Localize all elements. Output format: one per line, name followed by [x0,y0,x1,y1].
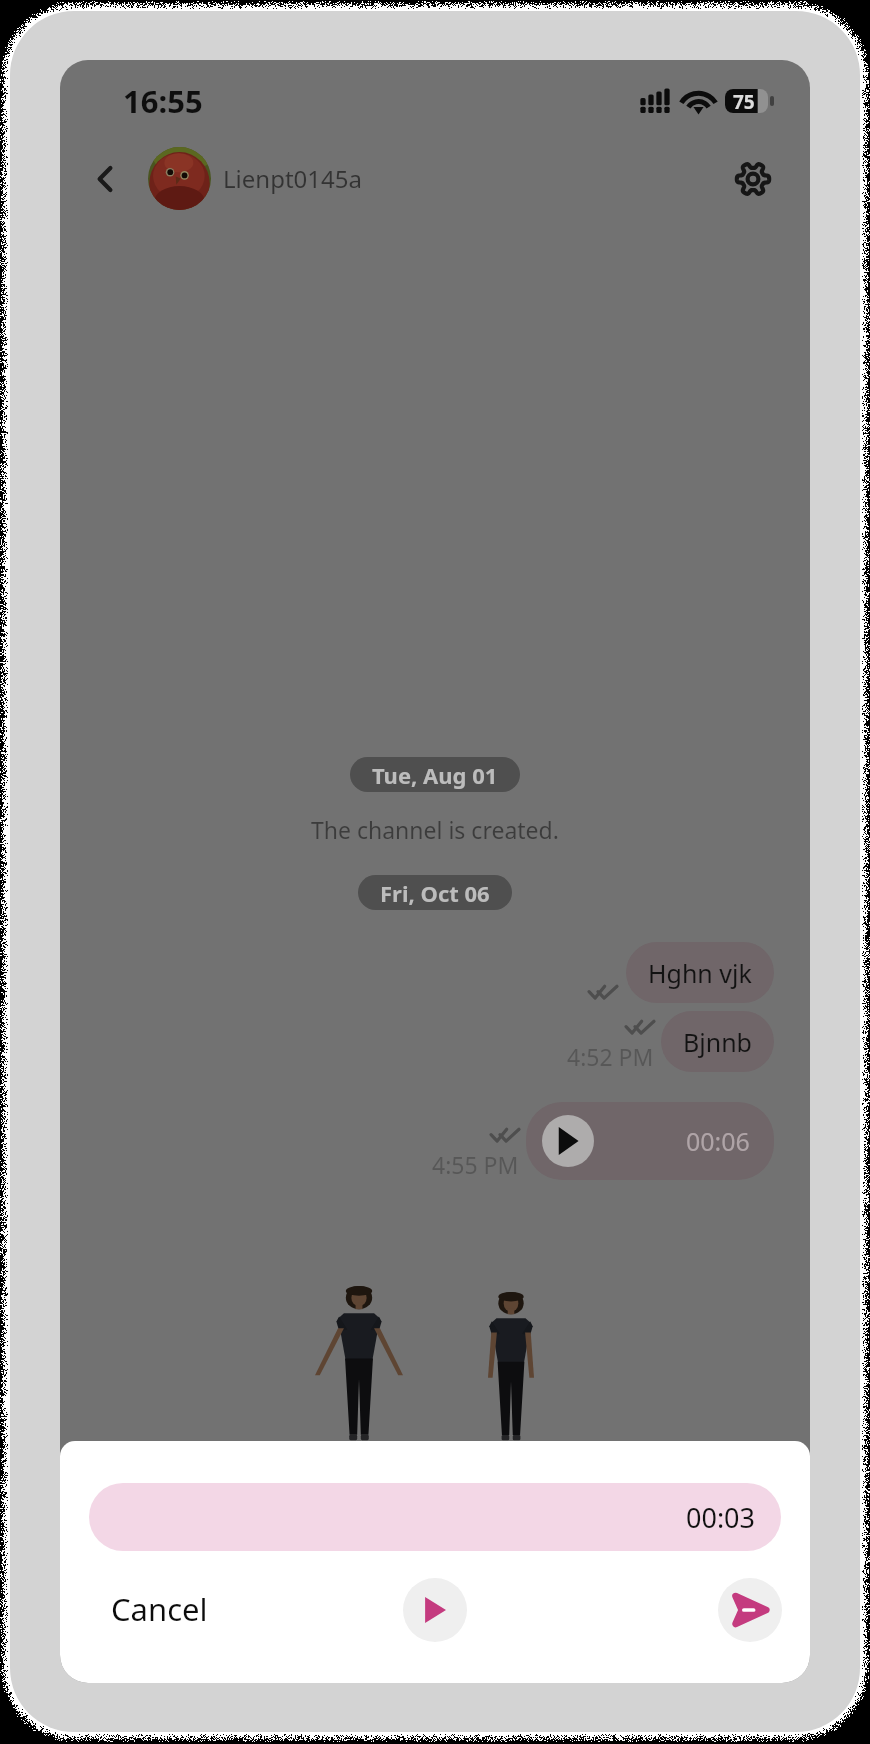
button[interactable]: Recording progress 00:03 [89,1483,781,1551]
button[interactable]: Cancel [107,1578,212,1640]
staticText: 75 [733,89,755,113]
button[interactable]: Back [76,150,134,208]
staticText: Tue, Aug 01 [372,760,498,790]
button[interactable]: Settings [722,148,784,210]
staticText: 00:03 [686,1499,756,1536]
staticText: Cancel [111,1588,208,1630]
button[interactable]: Play [403,1578,467,1642]
button[interactable]: Send [718,1578,782,1642]
button[interactable]: Voice message [526,1102,774,1180]
staticText: Fri, Oct 06 [380,878,490,908]
button[interactable]: Bjnnb [661,1011,774,1072]
staticText: Hghn vjk [648,956,752,990]
button[interactable]: Hghn vjk [626,942,774,1003]
staticText: 4:55 PM [432,1149,519,1180]
staticText: The channel is created. [311,814,559,845]
staticText: 4:52 PM [567,1041,654,1072]
button[interactable]: Lienpt0145a [134,148,370,211]
staticText: 00:06 [686,1124,750,1158]
staticText: 16:55 [123,80,203,122]
staticText: Bjnnb [683,1025,752,1059]
staticText: Lienpt0145a [223,162,362,195]
